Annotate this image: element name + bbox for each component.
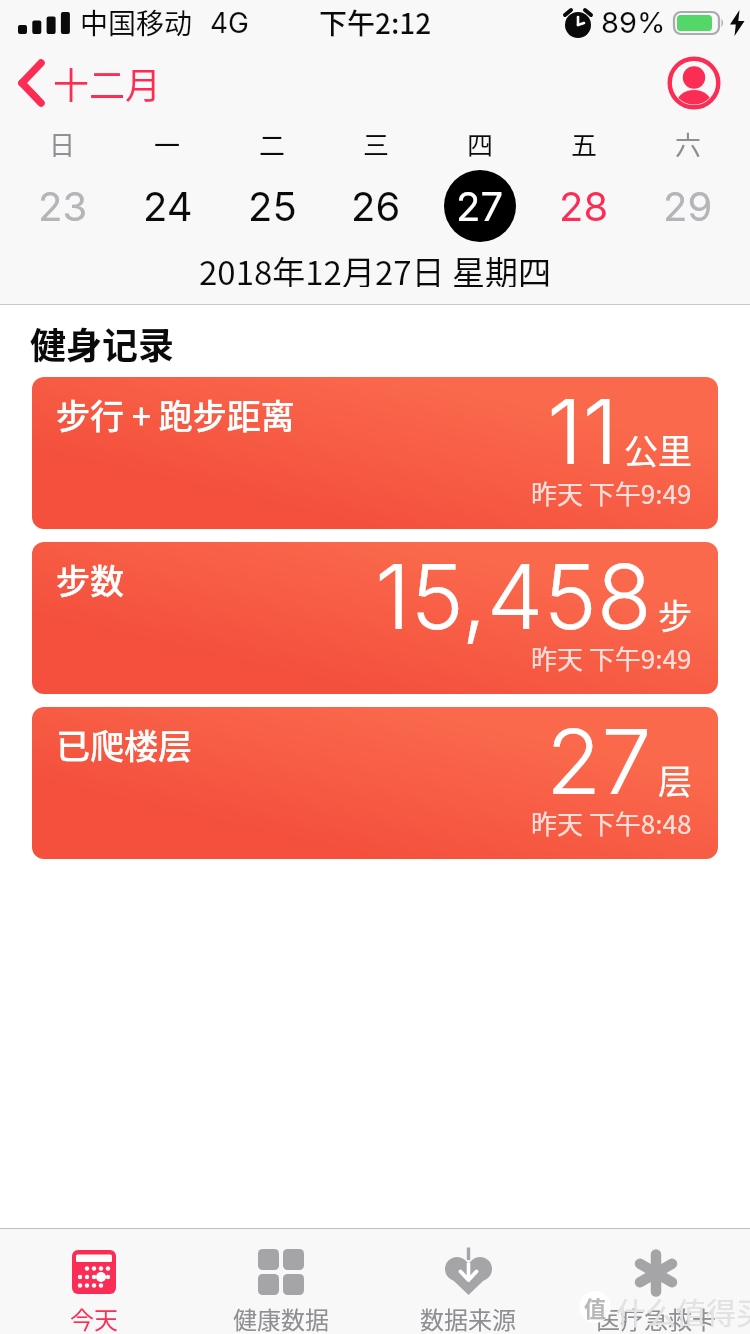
staticText: 28 <box>559 182 609 230</box>
staticText: 步 <box>658 590 692 639</box>
button[interactable]: 健康数据 <box>187 1229 374 1334</box>
button[interactable]: 27 <box>428 165 532 247</box>
staticText: 步行 + 跑步距离 <box>56 390 295 439</box>
staticText: 六 <box>675 125 702 163</box>
button[interactable]: 步数 <box>32 542 718 694</box>
staticText: 15,458 <box>375 542 652 651</box>
staticText: 下午2:12 <box>319 2 432 43</box>
button[interactable]: 数据来源 <box>374 1229 562 1334</box>
staticText: 23 <box>38 182 88 230</box>
staticText: 27 <box>456 182 504 230</box>
staticText: 公里 <box>624 425 692 474</box>
staticText: 昨天 下午9:49 <box>531 639 692 677</box>
staticText: 昨天 下午8:48 <box>531 804 692 842</box>
staticText: 昨天 下午9:49 <box>531 474 692 512</box>
staticText: 2018年12月27日 星期四 <box>199 247 551 287</box>
button[interactable]: 步行 + 跑步距离 <box>32 377 718 529</box>
staticText: 值 <box>584 1291 607 1323</box>
staticText: 26 <box>351 182 401 230</box>
staticText: 29 <box>663 182 713 230</box>
staticText: 四 <box>467 125 494 163</box>
button[interactable]: 24 <box>115 165 220 247</box>
staticText: 五 <box>571 125 598 163</box>
button[interactable]: 28 <box>532 165 636 247</box>
staticText: 步数 <box>56 555 124 604</box>
button[interactable]: 23 <box>10 165 115 247</box>
staticText: 89% <box>601 5 666 40</box>
staticText: 已爬楼层 <box>56 720 192 769</box>
staticText: 一 <box>154 125 181 163</box>
staticText: 11 <box>547 377 618 486</box>
button[interactable]: 医疗急救卡 <box>562 1229 750 1334</box>
staticText: 4G <box>210 6 249 40</box>
staticText: 二 <box>259 125 286 163</box>
button[interactable]: 26 <box>324 165 428 247</box>
button[interactable]: 29 <box>636 165 740 247</box>
button[interactable]: 已爬楼层 <box>32 707 718 859</box>
staticText: 中国移动 <box>80 2 193 43</box>
staticText: 健康数据 <box>233 1301 329 1334</box>
button[interactable]: 十二月 <box>16 57 162 109</box>
staticText: 医疗急救卡 <box>596 1301 716 1334</box>
button[interactable] <box>668 57 720 109</box>
staticText: 什么值得买 <box>616 1289 750 1332</box>
staticText: 25 <box>248 182 297 230</box>
staticText: 数据来源 <box>420 1301 516 1334</box>
button[interactable]: 25 <box>220 165 324 247</box>
staticText: 今天 <box>70 1301 118 1334</box>
staticText: 24 <box>143 182 193 230</box>
staticText: 三 <box>363 125 390 163</box>
staticText: 层 <box>658 755 692 804</box>
staticText: 日 <box>49 125 76 163</box>
button[interactable]: 今天 <box>0 1229 187 1334</box>
staticText: 健身记录 <box>30 317 175 369</box>
staticText: 十二月 <box>53 57 162 109</box>
staticText: 27 <box>546 707 652 816</box>
